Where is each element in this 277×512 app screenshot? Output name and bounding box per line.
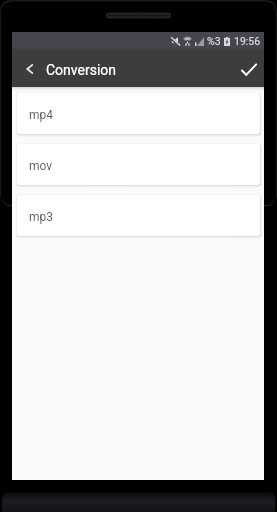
button[interactable]: Confirm [233, 49, 264, 87]
staticText: Conversion [46, 62, 117, 78]
staticText: mp3 [29, 210, 54, 224]
button[interactable]: Back [12, 49, 46, 87]
button[interactable]: mov [17, 144, 260, 185]
staticText: 19:56 [234, 35, 261, 47]
staticText: mp4 [29, 108, 54, 122]
button[interactable]: mp3 [17, 195, 260, 236]
button[interactable]: mp4 [17, 93, 260, 134]
staticText: %3 [207, 35, 221, 47]
staticText: mov [29, 159, 53, 173]
